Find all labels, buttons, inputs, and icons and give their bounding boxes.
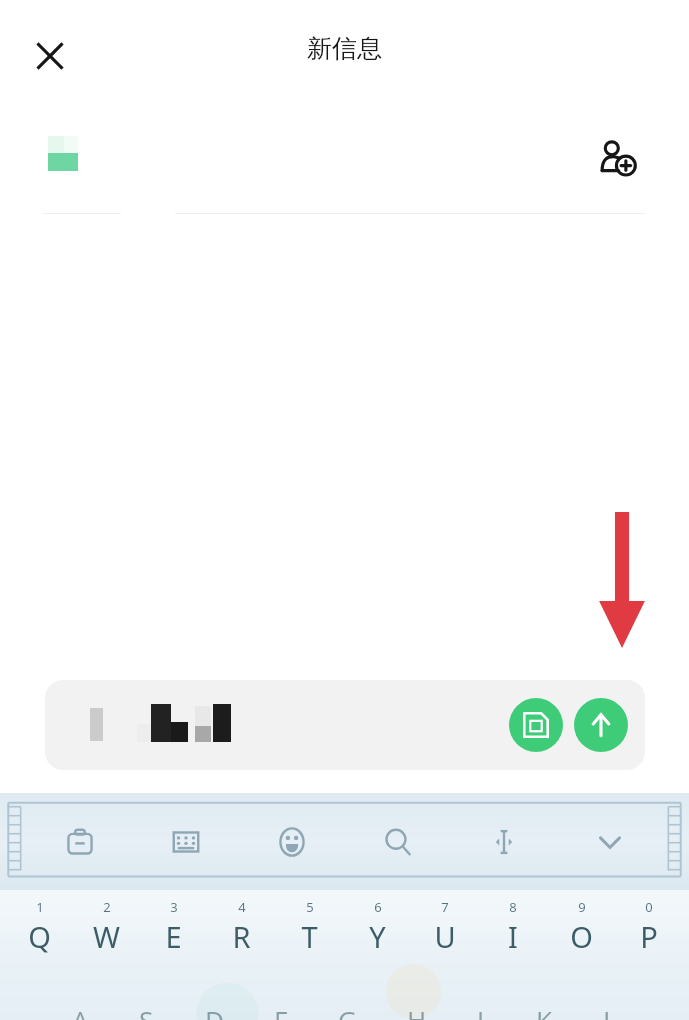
button[interactable]: Hide keyboard — [557, 793, 663, 890]
staticText: O — [570, 917, 593, 956]
button[interactable]: Close — [20, 26, 80, 86]
staticText: 1 — [36, 898, 44, 916]
button[interactable]: 5 — [275, 898, 343, 1012]
staticText: 4 — [238, 898, 246, 916]
staticText: G — [338, 1002, 357, 1020]
staticText: D — [205, 1002, 224, 1020]
staticText: 9 — [578, 898, 586, 916]
staticText: K — [536, 1002, 553, 1020]
staticText: H — [407, 1002, 427, 1020]
staticText: 6 — [374, 898, 382, 916]
button[interactable]: Add contact — [580, 122, 652, 194]
button[interactable]: Keyboard layout — [133, 793, 239, 890]
button[interactable]: 4 — [207, 898, 275, 1012]
staticText: R — [232, 917, 251, 956]
staticText: E — [165, 917, 182, 956]
staticText: 5 — [306, 898, 314, 916]
staticText: 0 — [645, 898, 653, 916]
button[interactable]: 1 — [6, 898, 73, 1012]
staticText: L — [603, 1002, 617, 1020]
button[interactable]: 0 — [615, 898, 683, 1012]
staticText: J — [477, 1002, 485, 1020]
button[interactable]: Move cursor — [451, 793, 557, 890]
button[interactable]: SIM 1 — [45, 680, 645, 770]
button[interactable]: SIM 1 — [509, 698, 563, 752]
staticText: A — [72, 1002, 89, 1020]
staticText: S — [139, 1002, 154, 1020]
staticText: U — [434, 917, 456, 956]
staticText: 2 — [103, 898, 111, 916]
staticText: W — [93, 917, 120, 956]
button[interactable]: Search — [345, 793, 451, 890]
staticText: 新信息 — [0, 33, 689, 64]
staticText: I — [508, 917, 518, 956]
button[interactable]: Emoji — [239, 793, 345, 890]
staticText: P — [640, 917, 658, 956]
button[interactable]: 3 — [140, 898, 207, 1012]
staticText: 7 — [441, 898, 449, 916]
staticText: 8 — [509, 898, 517, 916]
button[interactable]: 6 — [343, 898, 411, 1012]
staticText: F — [274, 1002, 288, 1020]
staticText: Y — [369, 917, 386, 956]
staticText: Q — [28, 917, 51, 956]
staticText: T — [301, 917, 318, 956]
button[interactable]: 8 — [479, 898, 547, 1012]
button[interactable]: Clipboard — [26, 793, 133, 890]
button[interactable]: 7 — [411, 898, 479, 1012]
staticText: 3 — [170, 898, 178, 916]
button[interactable]: 2 — [73, 898, 140, 1012]
button[interactable]: Send — [574, 698, 628, 752]
button[interactable]: 9 — [547, 898, 615, 1012]
